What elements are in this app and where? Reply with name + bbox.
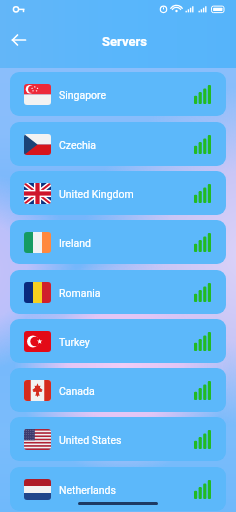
button[interactable]: Ireland <box>10 220 226 264</box>
button[interactable]: Back <box>4 25 34 55</box>
staticText: Ireland <box>59 237 91 249</box>
staticText: United States <box>59 434 122 446</box>
staticText: United Kingdom <box>59 188 134 200</box>
staticText: Turkey <box>59 336 90 348</box>
staticText: Czechia <box>59 139 97 151</box>
button[interactable]: Netherlands <box>10 467 226 511</box>
button[interactable]: United Kingdom <box>10 171 226 215</box>
staticText: Netherlands <box>59 484 116 496</box>
button[interactable]: United States <box>10 417 226 461</box>
button[interactable]: Canada <box>10 368 226 412</box>
button[interactable]: Czechia <box>10 122 226 166</box>
staticText: Canada <box>59 385 95 397</box>
button[interactable]: Singapore <box>10 72 226 116</box>
staticText: Singapore <box>59 89 107 101</box>
staticText: Servers <box>102 34 147 49</box>
button[interactable]: Romania <box>10 270 226 314</box>
staticText: Romania <box>59 287 101 299</box>
button[interactable]: Turkey <box>10 319 226 363</box>
